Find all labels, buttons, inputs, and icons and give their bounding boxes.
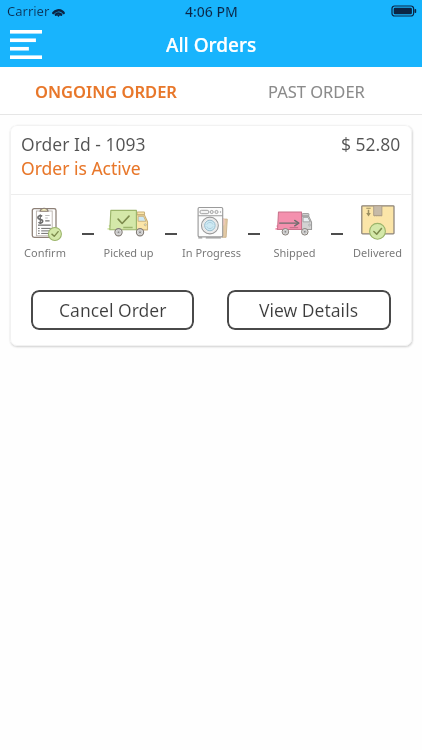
staticText: ONGOING ORDER	[35, 80, 177, 102]
button[interactable]: Cancel Order	[31, 290, 194, 330]
staticText: $ 52.80	[341, 132, 401, 156]
staticText: Shipped	[273, 245, 316, 260]
staticText: Delivered	[353, 245, 402, 260]
staticText: All Orders	[166, 32, 257, 58]
staticText: 4:06 PM	[185, 2, 238, 21]
button[interactable]: ONGOING ORDER	[0, 67, 211, 114]
button[interactable]: View Details	[227, 290, 391, 330]
staticText: PAST ORDER	[268, 80, 365, 102]
staticText: Order is Active	[21, 156, 141, 180]
staticText: Confirm	[24, 245, 66, 260]
button[interactable]: Menu	[0, 22, 52, 67]
button[interactable]: Order Id - 1093	[10, 125, 412, 346]
staticText: Cancel Order	[59, 298, 167, 322]
staticText: Carrier	[7, 2, 50, 20]
staticText: View Details	[259, 298, 359, 322]
button[interactable]: PAST ORDER	[211, 67, 422, 114]
staticText: In Progress	[182, 245, 241, 260]
staticText: Picked up	[103, 245, 154, 260]
staticText: Order Id - 1093	[21, 132, 146, 156]
